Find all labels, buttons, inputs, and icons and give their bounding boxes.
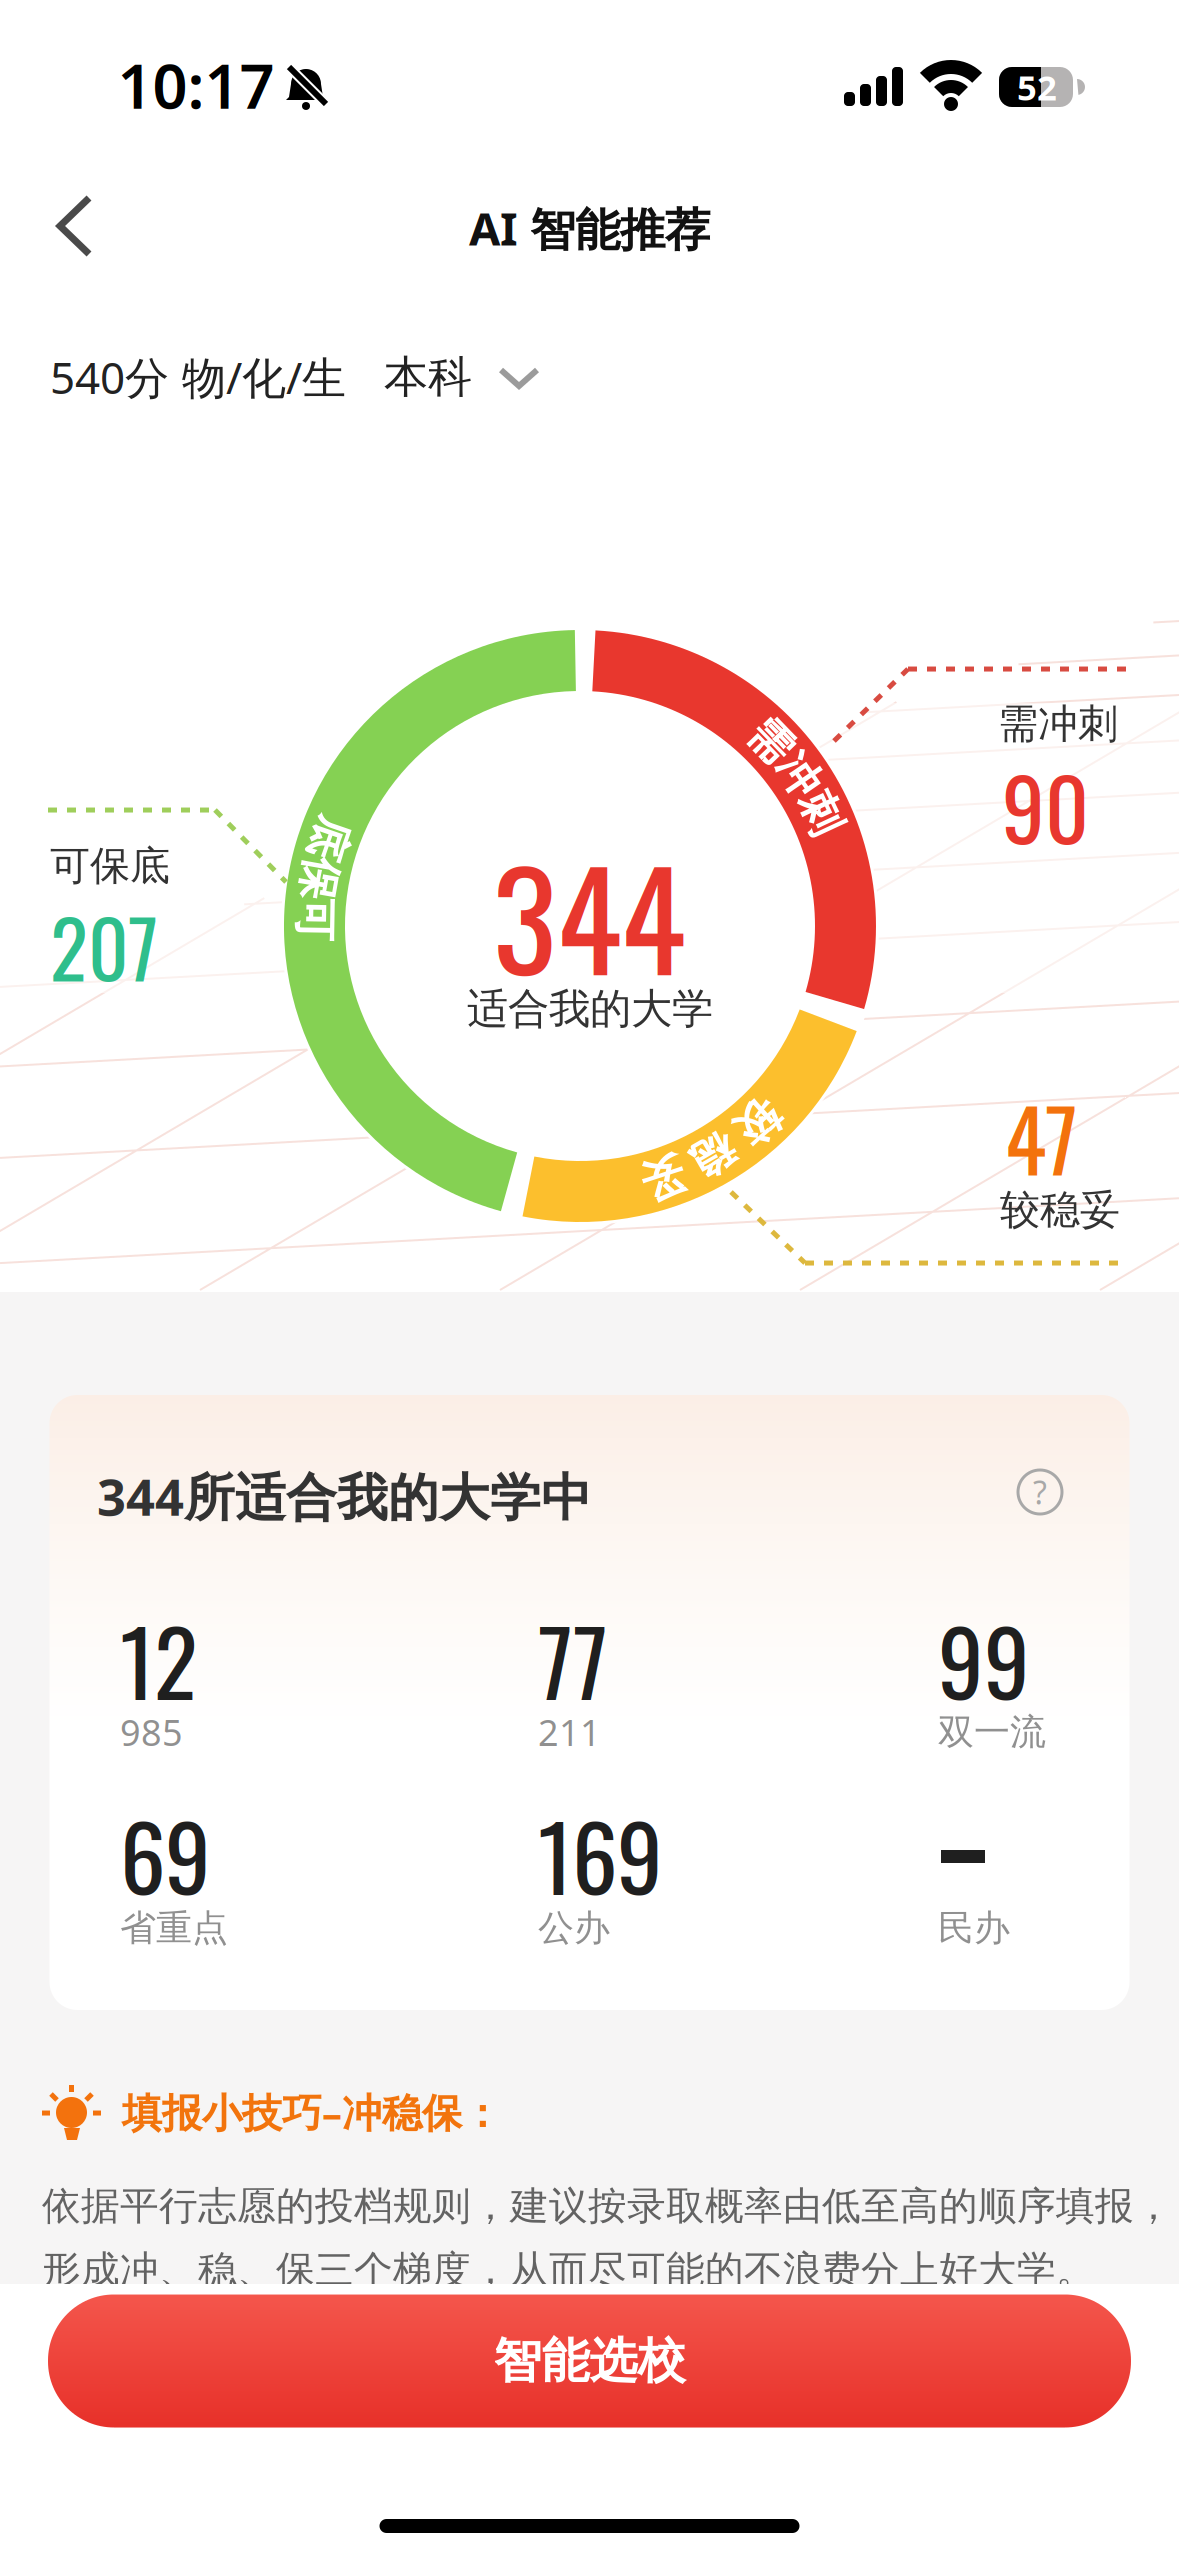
staticText: 妥 [640, 1152, 683, 1205]
staticText: 77 [538, 1592, 608, 1726]
staticText: 52 [1017, 64, 1057, 110]
staticText: 本科 [384, 350, 472, 404]
button[interactable]: 智能选校 [48, 2294, 1131, 2427]
staticText: 169 [538, 1787, 663, 1921]
staticText: 稳 [691, 1130, 734, 1182]
button[interactable]: 说明 [1012, 1464, 1068, 1520]
button[interactable]: 540分 物/化/生 [50, 348, 750, 406]
staticText: 智能选校 [493, 2331, 685, 2390]
staticText: 适合我的大学 [467, 984, 713, 1034]
staticText: 公办 [538, 1906, 610, 1950]
staticText: 冲 [777, 749, 820, 802]
staticText: 依据平行志愿的投档规则，建议按录取概率由低至高的顺序填报， [42, 2182, 1173, 2230]
staticText: 填报小技巧–冲稳保： [122, 2085, 502, 2138]
staticText: 可 [293, 895, 336, 948]
staticText: 可保底 [50, 841, 170, 890]
staticText: 需冲刺 [998, 699, 1118, 748]
staticText: 99 [938, 1592, 1030, 1726]
staticText: 344 [493, 816, 685, 1014]
staticText: 民办 [938, 1906, 1010, 1950]
staticText: 207 [50, 888, 158, 1004]
staticText: 10:17 [117, 44, 274, 126]
staticText: 985 [120, 1708, 183, 1756]
staticText: 刺 [799, 788, 842, 840]
staticText: 较 [736, 1097, 779, 1149]
staticText: AI 智能推荐 [469, 198, 710, 258]
staticText: 69 [120, 1787, 211, 1921]
button[interactable]: 返回 [35, 186, 115, 266]
staticText: 90 [1002, 743, 1089, 869]
staticText: 保 [297, 854, 340, 906]
staticText: 344所适合我的大学中 [97, 1462, 592, 1530]
staticText: 较稳妥 [1000, 1185, 1120, 1234]
staticText: 省重点 [120, 1906, 228, 1950]
staticText: 211 [538, 1708, 601, 1756]
staticText: ? [1033, 1471, 1047, 1513]
staticText: 双一流 [938, 1710, 1046, 1754]
staticText: 540分 物/化/生 [50, 348, 346, 406]
staticText: 12 [120, 1592, 197, 1726]
staticText: 需 [749, 715, 792, 768]
staticText: 形成冲、稳、保三个梯度，从而尽可能的不浪费分上好大学。 [42, 2246, 1095, 2294]
staticText: 底 [307, 813, 350, 866]
staticText: 47 [1005, 1074, 1078, 1200]
